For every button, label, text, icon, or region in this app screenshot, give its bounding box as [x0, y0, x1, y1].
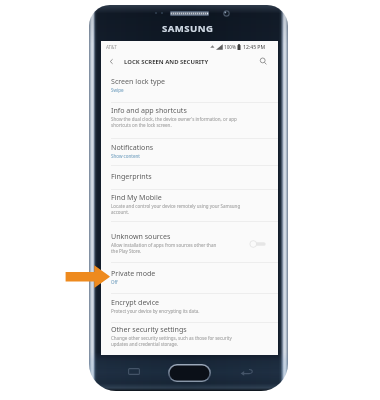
staticText: Allow installation of apps from sources …: [111, 242, 217, 254]
staticText: Fingerprints: [111, 171, 152, 181]
staticText: Unknown sources: [111, 231, 171, 241]
staticText: Notifications: [111, 142, 154, 152]
button[interactable]: Home: [168, 364, 211, 382]
staticText: Off: [111, 279, 118, 285]
staticText: AT&T: [106, 44, 117, 50]
staticText: Locate and control your device remotely …: [111, 203, 241, 215]
staticText: Encrypt device: [111, 297, 160, 307]
staticText: Show the dual clock, the device owner's …: [111, 116, 237, 128]
staticText: Private mode: [111, 268, 156, 278]
staticText: Other security settings: [111, 324, 187, 334]
button[interactable]: Recent apps: [128, 368, 140, 375]
staticText: Change other security settings, such as …: [111, 335, 232, 347]
button[interactable]: Notifications: [101, 138, 278, 165]
button[interactable]: Fingerprints: [101, 165, 278, 190]
staticText: LOCK SCREEN AND SECURITY: [124, 58, 209, 66]
button[interactable]: Navigate up: [102, 53, 120, 70]
staticText: 12:45 PM: [243, 44, 266, 51]
staticText: SAMSUNG: [162, 22, 214, 35]
button[interactable]: Unknown sources: [101, 221, 278, 263]
button[interactable]: Private mode: [101, 262, 278, 293]
button[interactable]: Info and app shortcuts: [101, 102, 278, 138]
button[interactable]: Search: [254, 53, 272, 70]
staticText: 100%: [224, 44, 236, 50]
button[interactable]: Back: [240, 368, 254, 376]
staticText: Screen lock type: [111, 76, 166, 86]
staticText: Swipe: [111, 87, 124, 93]
staticText: Find My Mobile: [111, 192, 162, 202]
button[interactable]: Screen lock type: [101, 70, 278, 102]
staticText: Protect your device by encrypting its da…: [111, 308, 200, 314]
staticText: Info and app shortcuts: [111, 105, 187, 115]
staticText: Show content: [111, 153, 140, 159]
button[interactable]: Other security settings: [101, 322, 278, 355]
button[interactable]: Find My Mobile: [101, 189, 278, 221]
button[interactable]: Encrypt device: [101, 293, 278, 322]
